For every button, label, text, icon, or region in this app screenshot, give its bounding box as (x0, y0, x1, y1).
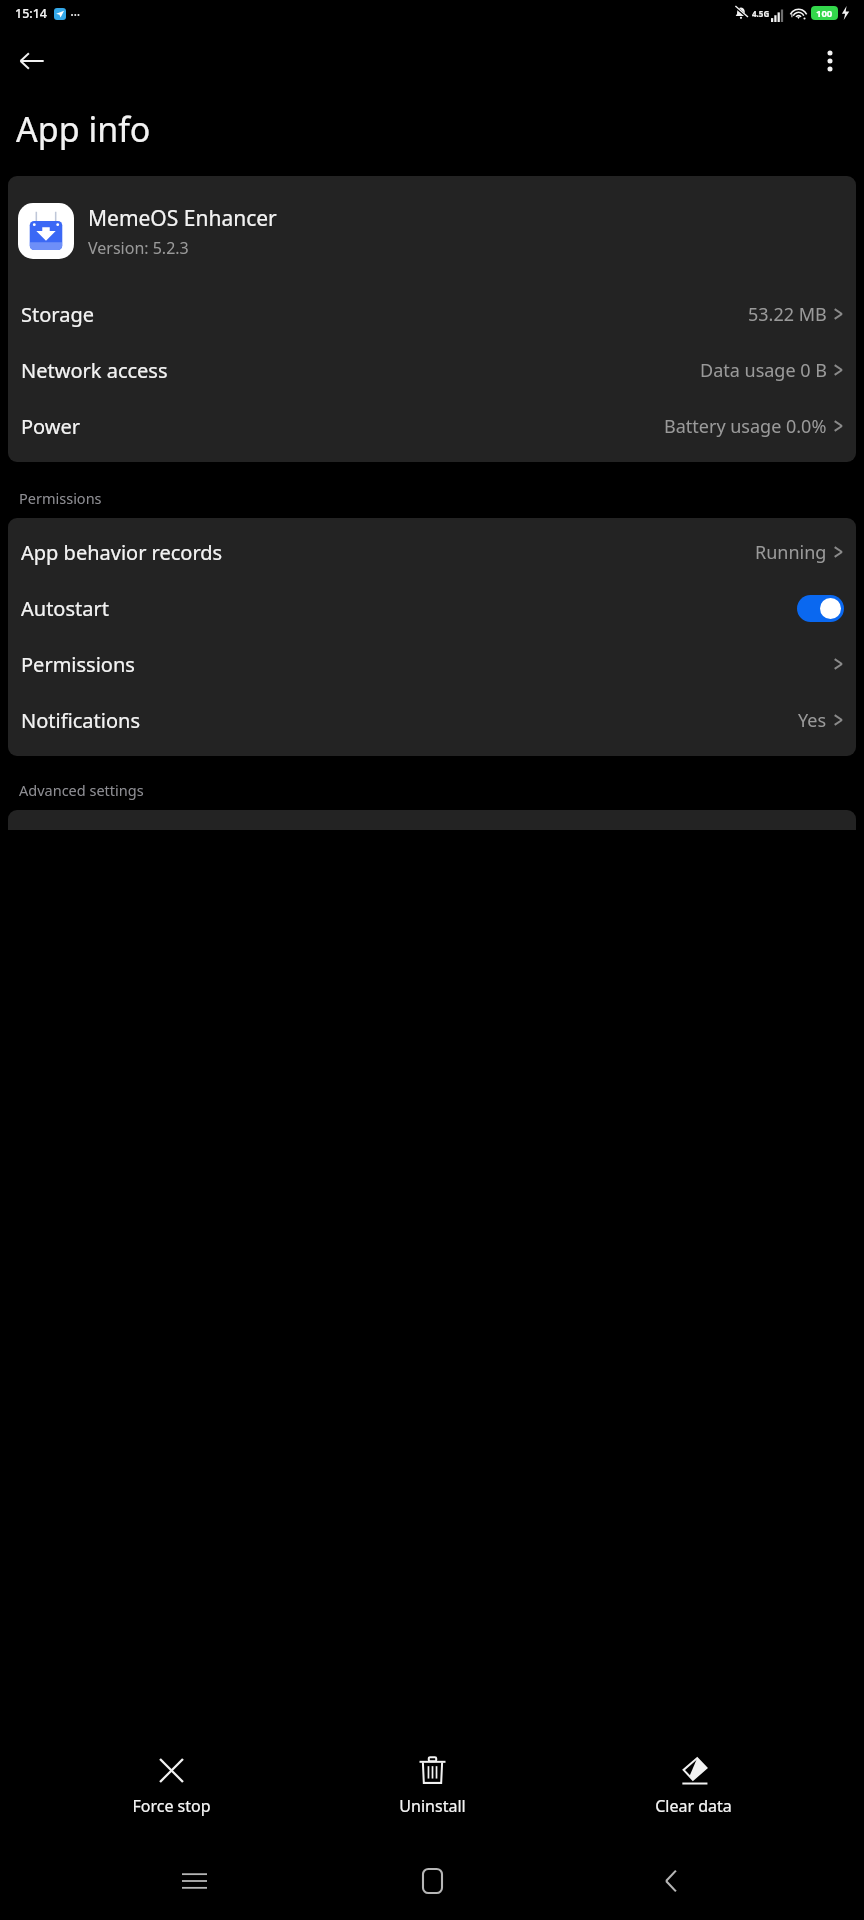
staticText: MemeOS Enhancer (88, 204, 277, 233)
button[interactable]: Home (387, 1842, 477, 1920)
button[interactable]: Recents (149, 1842, 239, 1920)
button[interactable]: Force stop (81, 1749, 261, 1823)
button[interactable]: Power (8, 398, 856, 454)
staticText: Power (21, 413, 81, 440)
staticText: Battery usage 0.0% (664, 414, 827, 439)
button[interactable]: Network access (8, 342, 856, 398)
staticText: 15:14 (15, 5, 48, 22)
button[interactable]: Back (8, 37, 56, 85)
staticText: 53.22 MB (748, 302, 827, 327)
staticText: Network access (21, 357, 168, 384)
staticText: Clear data (655, 1795, 732, 1817)
button[interactable]: Autostart (8, 580, 856, 636)
staticText: App info (16, 106, 151, 152)
staticText: Running (755, 540, 827, 565)
button[interactable]: App behavior records (8, 524, 856, 580)
staticText: Advanced settings (19, 780, 144, 800)
staticText: Data usage 0 B (700, 358, 827, 383)
button[interactable]: Uninstall (342, 1749, 522, 1823)
button[interactable]: Storage (8, 286, 856, 342)
staticText: Permissions (19, 488, 102, 508)
button[interactable]: MemeOS Enhancer (8, 176, 856, 286)
staticText: Version: 5.2.3 (88, 237, 189, 259)
staticText: 4.5G (752, 8, 770, 19)
staticText: 100 (816, 7, 833, 20)
button[interactable]: More options (806, 37, 854, 85)
button[interactable]: Back (626, 1842, 716, 1920)
staticText: Autostart (21, 595, 109, 622)
staticText: App behavior records (21, 539, 223, 566)
staticText: Uninstall (399, 1795, 466, 1817)
staticText: Yes (798, 708, 827, 733)
staticText: Permissions (21, 651, 135, 678)
button[interactable]: Permissions (8, 636, 856, 692)
staticText: Storage (21, 301, 94, 328)
button[interactable]: Clear data (603, 1749, 783, 1823)
staticText: Notifications (21, 707, 140, 734)
staticText: Force stop (132, 1795, 211, 1817)
button[interactable]: Notifications (8, 692, 856, 748)
